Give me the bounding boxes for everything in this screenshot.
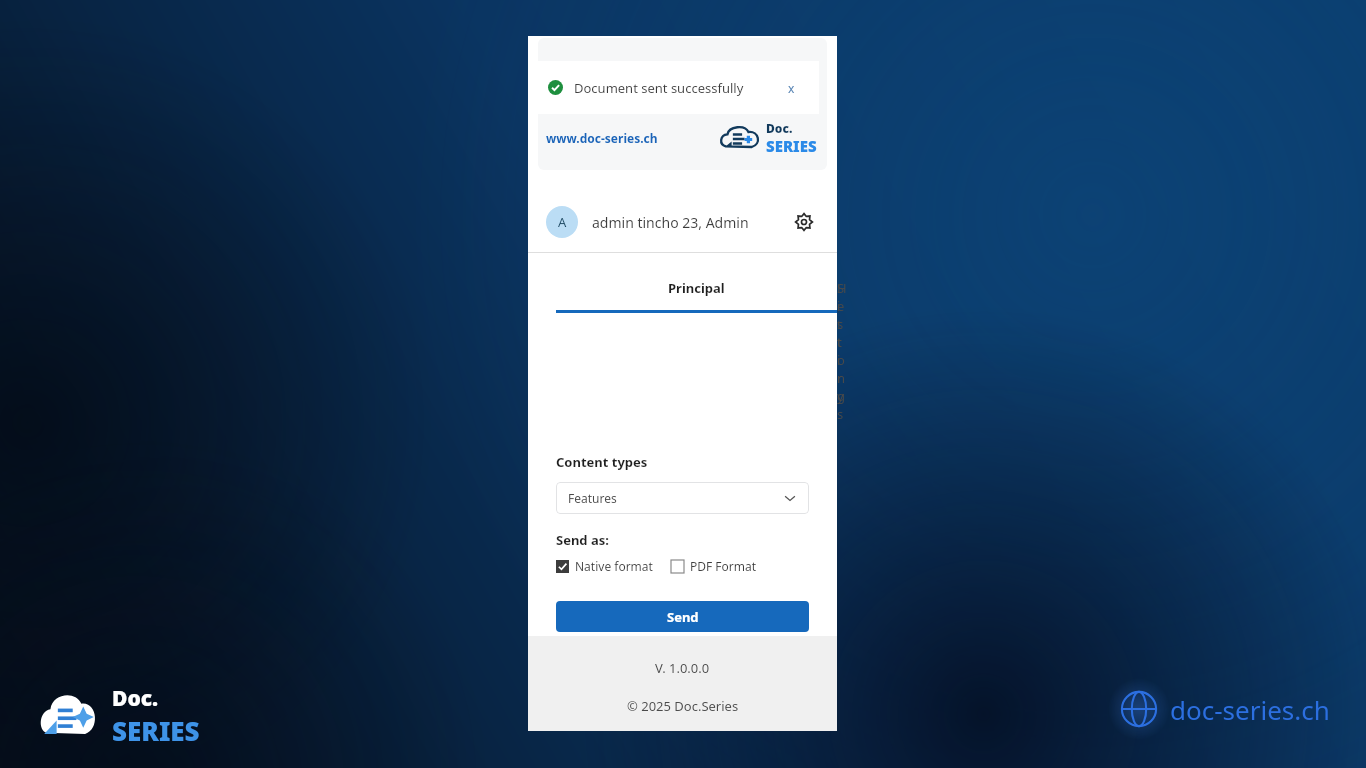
button[interactable]: Native format	[556, 558, 653, 574]
staticText: admin tincho 23, Admin	[592, 213, 789, 232]
button[interactable]: PDF Format	[671, 558, 757, 574]
staticText: Doc.	[112, 684, 159, 713]
button[interactable]: Send	[556, 601, 809, 632]
staticText: Content types	[556, 453, 648, 471]
staticText: SERIES	[766, 136, 817, 156]
staticText: Features	[568, 490, 783, 506]
staticText: Principal	[668, 279, 725, 297]
staticText: doc-series.ch	[1170, 692, 1330, 727]
button[interactable]: Principal	[556, 279, 837, 313]
staticText: x	[788, 80, 795, 96]
staticText: Send	[667, 608, 699, 626]
staticText: Doc.	[766, 120, 793, 136]
staticText: Send as:	[556, 531, 609, 549]
button[interactable]: Settings	[789, 207, 819, 237]
button[interactable]: Doc Series	[38, 684, 200, 748]
button[interactable]: doc-series.ch website	[1120, 690, 1330, 728]
button[interactable]: Features	[556, 482, 809, 514]
button[interactable]: Close	[780, 77, 802, 99]
staticText: © 2025 Doc.Series	[627, 697, 739, 715]
staticText: Native format	[575, 558, 653, 574]
staticText: PDF Format	[690, 558, 757, 574]
staticText: Document sent successfully	[574, 79, 780, 97]
staticText: A	[558, 213, 567, 231]
button[interactable]: A	[546, 206, 578, 238]
staticText: SERIES	[112, 713, 200, 748]
button[interactable]: www.doc-series.ch	[546, 130, 658, 146]
staticText: V. 1.0.0.0	[655, 659, 710, 677]
